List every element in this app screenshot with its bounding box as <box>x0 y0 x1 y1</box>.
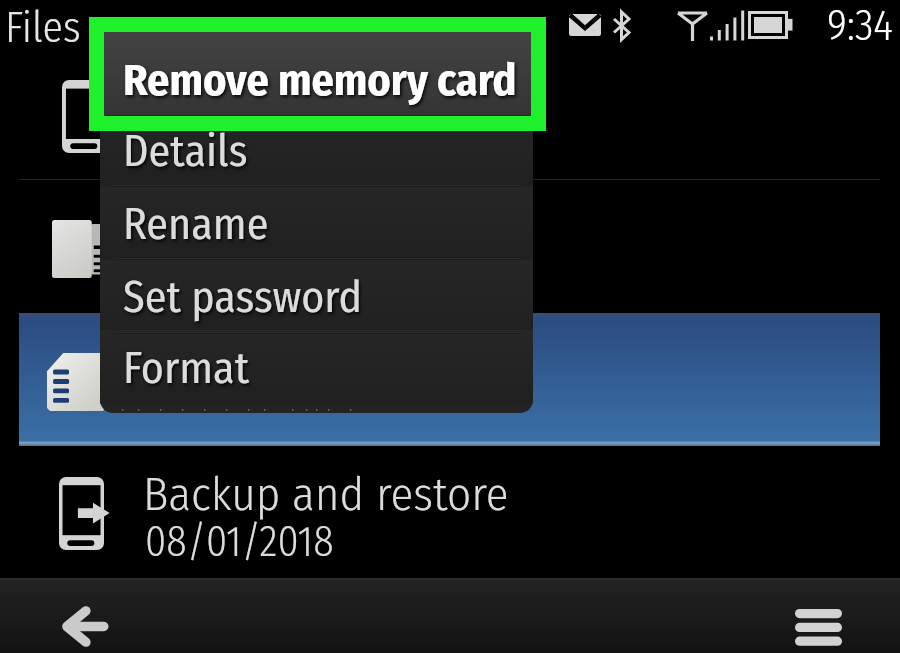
button[interactable]: Set password <box>100 260 533 333</box>
staticText: Format <box>123 342 250 395</box>
staticText: Files <box>5 3 81 51</box>
button[interactable]: Rename <box>100 187 533 259</box>
button[interactable]: Remove memory card <box>100 32 533 115</box>
staticText: Rename <box>123 198 269 251</box>
button[interactable]: Details <box>100 115 533 186</box>
staticText: Backup and restore <box>143 466 509 522</box>
button[interactable] <box>0 48 900 180</box>
button[interactable]: Format <box>100 330 533 404</box>
staticText: Set password <box>123 271 363 324</box>
button[interactable]: Back <box>24 578 142 653</box>
button[interactable]: Options menu <box>782 578 900 653</box>
button[interactable] <box>0 181 900 313</box>
button[interactable] <box>19 313 880 446</box>
button[interactable]: Backup and restore <box>0 446 900 578</box>
staticText: 9:34 <box>827 1 893 49</box>
staticText: Remove memory card <box>123 54 517 107</box>
staticText: 08/01/2018 <box>145 517 334 567</box>
staticText: Details <box>123 125 248 178</box>
